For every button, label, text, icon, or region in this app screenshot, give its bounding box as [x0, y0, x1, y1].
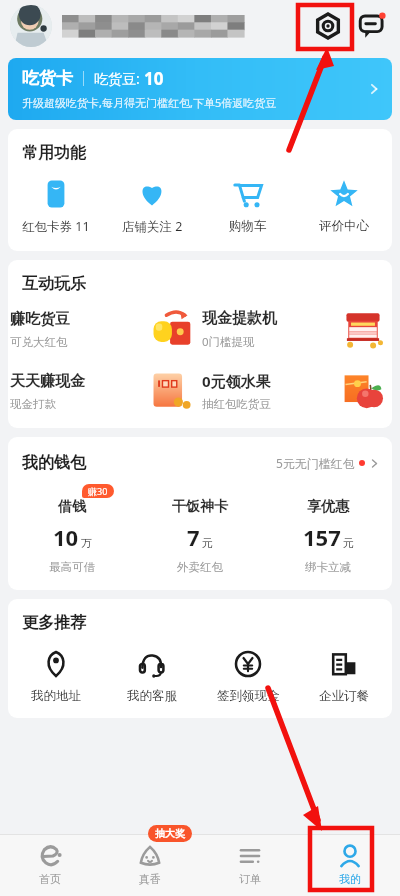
staticText: 吃货卡	[22, 68, 73, 89]
staticText: 吃货豆:	[94, 69, 140, 88]
staticText: 我的地址	[31, 688, 81, 704]
staticText: 157	[303, 522, 341, 552]
staticText: 天天赚现金	[10, 372, 85, 391]
staticText: 店铺关注 2	[122, 218, 183, 235]
button[interactable]: 订单	[200, 834, 300, 896]
staticText: 赚吃货豆	[10, 310, 70, 329]
button[interactable]: 评价中心	[296, 177, 392, 236]
staticText: 10	[144, 67, 164, 90]
staticText: 7	[187, 522, 200, 552]
staticText: 绑卡立减	[305, 560, 351, 574]
staticText: 0元领水果	[202, 371, 271, 391]
staticText: 企业订餐	[319, 688, 369, 704]
staticText: 外卖红包	[177, 560, 223, 574]
button[interactable]: 店铺关注 2	[104, 177, 200, 237]
staticText: 借钱	[58, 498, 86, 516]
staticText: 订单	[239, 872, 261, 886]
staticText: 享优惠	[307, 498, 349, 516]
button[interactable]: 首页	[0, 834, 100, 896]
button[interactable]: 真香	[100, 834, 200, 896]
button[interactable]: Messages	[354, 8, 390, 44]
staticText: 我的客服	[127, 688, 177, 704]
staticText: 真香	[139, 872, 161, 886]
staticText: 红包卡券 11	[22, 218, 90, 235]
staticText: 0门槛提现	[202, 334, 255, 350]
staticText: 元	[343, 536, 354, 550]
staticText: 元	[202, 536, 213, 550]
staticText: 抽大奖	[155, 827, 185, 840]
staticText: 常用功能	[22, 143, 86, 163]
button[interactable]: 我的客服	[104, 647, 200, 706]
button[interactable]: 赚30	[8, 483, 136, 574]
button[interactable]: 干饭神卡	[136, 483, 264, 574]
button[interactable]: 我的地址	[8, 647, 104, 706]
button[interactable]: 购物车	[200, 177, 296, 236]
button[interactable]: 现金提款机	[200, 306, 392, 352]
button[interactable]: 我的	[300, 834, 400, 896]
staticText: 购物车	[229, 218, 267, 234]
staticText: 干饭神卡	[172, 498, 228, 516]
button[interactable]: 企业订餐	[296, 647, 392, 706]
button[interactable]: Profile avatar	[10, 5, 52, 47]
button[interactable]: 签到领现金	[200, 647, 296, 706]
button[interactable]: 吃货卡	[8, 58, 392, 120]
staticText: 我的钱包	[22, 453, 86, 473]
staticText: 评价中心	[319, 218, 369, 234]
staticText: 抽红包吃货豆	[202, 397, 271, 411]
button[interactable]: Settings	[310, 8, 346, 44]
button[interactable]: 红包卡券 11	[8, 177, 104, 237]
button[interactable]: 赚吃货豆	[8, 306, 200, 352]
staticText: 更多推荐	[22, 613, 86, 633]
staticText: 现金提款机	[202, 309, 277, 328]
staticText: 10	[53, 522, 79, 552]
staticText: 可兑大红包	[10, 335, 68, 349]
staticText: 互动玩乐	[22, 274, 86, 294]
staticText: 5元无门槛红包	[276, 455, 355, 471]
staticText: 赚30	[88, 485, 108, 497]
button[interactable]: 享优惠	[264, 483, 392, 574]
staticText: 最高可借	[49, 560, 95, 574]
staticText: 现金打款	[10, 397, 56, 411]
button[interactable]: 0元领水果	[200, 368, 392, 414]
staticText: 首页	[39, 872, 61, 886]
staticText: 升级超级吃货卡,每月得无门槛红包,下单5倍返吃货豆	[22, 95, 277, 110]
staticText: 我的	[339, 872, 361, 886]
button[interactable]: 天天赚现金	[8, 368, 200, 414]
staticText: 万	[81, 536, 92, 550]
staticText: 签到领现金	[217, 688, 280, 704]
button[interactable]: 5元无门槛红包	[276, 451, 380, 475]
